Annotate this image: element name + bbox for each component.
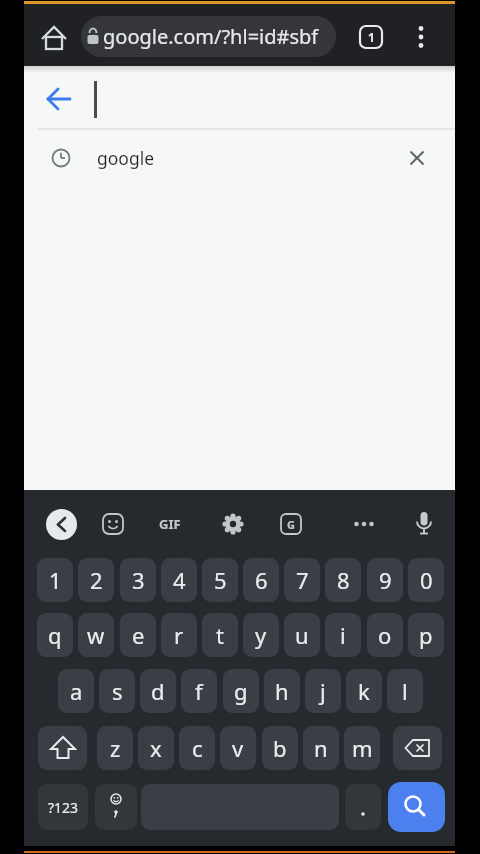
staticText: 6 [255,565,268,595]
button[interactable]: b [262,726,298,770]
staticText: u [295,620,309,650]
staticText: t [216,620,224,650]
button[interactable] [81,16,336,57]
button[interactable] [220,511,246,537]
button[interactable] [24,130,455,188]
staticText: b [273,733,287,763]
staticText: q [48,620,62,650]
button[interactable]: 6 [243,558,279,602]
button[interactable]: u [284,613,320,657]
button[interactable] [95,784,137,830]
staticText: h [275,676,289,706]
button[interactable] [411,23,431,53]
staticText: 9 [379,565,392,595]
button[interactable]: t [202,613,238,657]
button[interactable] [100,511,126,537]
button[interactable]: 8 [325,558,361,602]
button[interactable]: 7 [284,558,320,602]
staticText: n [314,733,328,763]
button[interactable]: e [120,613,156,657]
button[interactable]: s [99,669,135,713]
staticText: x [150,733,162,763]
button[interactable] [350,512,378,536]
staticText: google [97,146,155,170]
staticText: 1 [368,29,375,45]
button[interactable]: d [140,669,176,713]
button[interactable]: q [37,613,73,657]
staticText: z [110,733,121,763]
staticText: g [234,676,248,706]
staticText: a [70,676,83,706]
button[interactable] [345,784,381,830]
staticText: 8 [337,565,350,595]
button[interactable] [393,726,442,770]
button[interactable]: g [223,669,259,713]
staticText: k [358,676,370,706]
button[interactable] [150,512,190,536]
staticText: c [192,733,203,763]
button[interactable]: c [179,726,215,770]
staticText: 3 [132,565,145,595]
button[interactable]: 3 [120,558,156,602]
button[interactable]: p [408,613,444,657]
button[interactable]: 2 [78,558,114,602]
staticText: i [340,620,346,650]
staticText: 5 [214,565,227,595]
button[interactable] [38,21,70,55]
staticText: w [87,620,105,650]
button[interactable]: o [367,613,403,657]
button[interactable]: f [181,669,217,713]
button[interactable]: k [346,669,382,713]
button[interactable]: 5 [202,558,238,602]
button[interactable] [388,782,445,832]
staticText: p [419,620,433,650]
staticText: GIF [159,515,181,533]
button[interactable]: h [264,669,300,713]
button[interactable] [38,726,87,770]
staticText: 2 [90,565,103,595]
button[interactable]: v [220,726,256,770]
staticText: 0 [420,565,433,595]
button[interactable]: w [78,613,114,657]
button[interactable]: n [303,726,339,770]
staticText: o [378,620,392,650]
button[interactable] [411,509,437,539]
staticText: 4 [173,565,186,595]
button[interactable]: 4 [161,558,197,602]
button[interactable]: a [58,669,94,713]
staticText: ?123 [48,798,79,817]
button[interactable]: z [97,726,133,770]
button[interactable]: 0 [408,558,444,602]
staticText: f [195,676,203,706]
staticText: r [174,620,184,650]
button[interactable]: ?123 [38,784,88,830]
button[interactable]: r [161,613,197,657]
button[interactable]: m [344,726,380,770]
staticText: G [287,517,295,532]
staticText: l [402,676,408,706]
staticText: j [320,676,326,706]
button[interactable]: 9 [367,558,403,602]
button[interactable] [403,144,431,172]
staticText: s [112,676,123,706]
staticText: 1 [49,565,62,595]
staticText: v [232,733,244,763]
button[interactable]: 1 [37,558,73,602]
staticText: google.com/?hl=id#sbf [103,23,319,50]
staticText: m [352,733,373,763]
button[interactable]: y [243,613,279,657]
button[interactable]: i [325,613,361,657]
staticText: d [151,676,165,706]
staticText: y [255,620,267,650]
button[interactable] [46,509,77,540]
button[interactable] [358,24,384,50]
button[interactable]: l [387,669,423,713]
button[interactable]: j [305,669,341,713]
button[interactable] [278,511,304,537]
button[interactable] [43,83,75,115]
staticText: 7 [296,565,309,595]
button[interactable]: x [138,726,174,770]
staticText: e [132,620,145,650]
